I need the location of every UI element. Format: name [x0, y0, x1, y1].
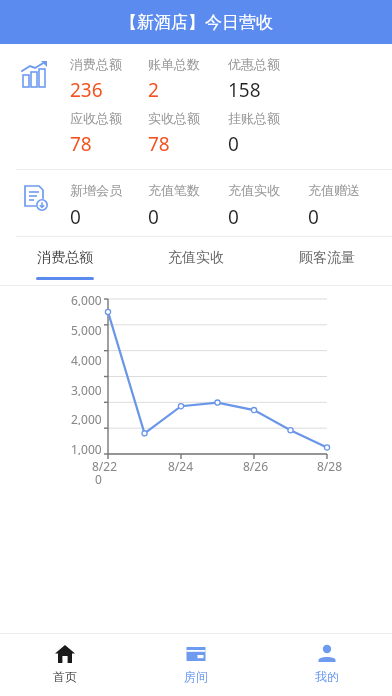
button[interactable]: Recharge records	[0, 170, 392, 236]
staticText: 5,000	[71, 322, 102, 336]
staticText: 首页	[53, 669, 77, 684]
staticText: 8/22	[92, 458, 118, 474]
staticText: 8/28	[317, 458, 343, 474]
staticText: 4,000	[71, 352, 102, 366]
staticText: 0	[228, 204, 308, 230]
staticText: 优惠总额	[228, 56, 308, 72]
staticText: 应收总额	[70, 110, 148, 126]
staticText: 账单总数	[148, 56, 228, 72]
staticText: 实收总额	[148, 110, 228, 126]
staticText: 充值实收	[228, 182, 308, 198]
other: Profile	[316, 643, 338, 665]
other: Home	[54, 643, 76, 665]
button[interactable]: Home	[0, 634, 130, 692]
button[interactable]: 消费总额	[0, 237, 130, 285]
other: Recharge records	[21, 184, 49, 212]
staticText: 我的	[315, 669, 339, 684]
staticText: 6,000	[71, 292, 102, 306]
button[interactable]: Rooms	[130, 634, 261, 692]
staticText: 充值笔数	[148, 182, 228, 198]
button[interactable]: Profile	[261, 634, 392, 692]
button[interactable]: 顾客流量	[261, 237, 392, 285]
staticText: 2,000	[71, 411, 102, 425]
staticText: 1,000	[71, 441, 102, 455]
staticText: 房间	[184, 669, 208, 684]
staticText: 充值实收	[168, 249, 224, 267]
staticText: 消费总额	[70, 56, 148, 72]
staticText: 236	[70, 77, 148, 103]
staticText: 2	[148, 77, 228, 103]
staticText: 0	[70, 204, 148, 230]
staticText: 挂账总额	[228, 110, 308, 126]
other: Rooms	[185, 643, 207, 665]
staticText: 顾客流量	[299, 249, 355, 267]
staticText: 0	[95, 471, 102, 486]
staticText: 新增会员	[70, 182, 148, 198]
staticText: 充值赠送	[308, 182, 388, 198]
staticText: 8/26	[243, 458, 269, 474]
staticText: 【新酒店】今日营收	[120, 12, 273, 33]
button[interactable]: 充值实收	[130, 237, 261, 285]
button[interactable]: Revenue chart	[0, 44, 392, 169]
staticText: 消费总额	[37, 249, 93, 267]
staticText: 158	[228, 77, 308, 103]
staticText: 8/24	[168, 458, 194, 474]
staticText: 0	[148, 204, 228, 230]
staticText: 3,000	[71, 382, 102, 396]
staticText: 0	[228, 131, 308, 157]
staticText: 0	[308, 204, 388, 230]
other: Revenue chart	[20, 60, 50, 90]
staticText: 78	[148, 131, 228, 157]
staticText: 78	[70, 131, 148, 157]
